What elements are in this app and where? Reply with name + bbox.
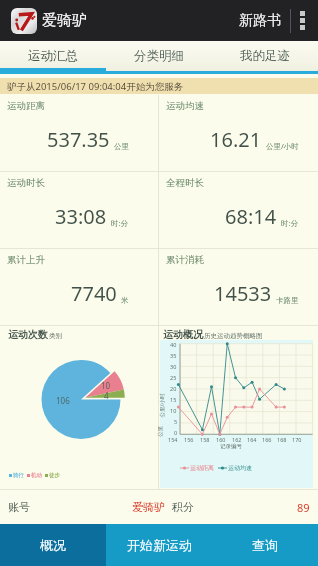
staticText: 35: [170, 352, 177, 359]
staticText: 徒步: [49, 472, 60, 479]
staticText: 166: [262, 436, 272, 443]
staticText: 分类明细: [134, 48, 184, 64]
button[interactable]: 运动距离: [0, 95, 158, 171]
button[interactable]: 106: [0, 326, 158, 489]
staticText: 爱骑驴: [42, 11, 87, 30]
staticText: 10: [170, 407, 177, 414]
button[interactable]: App logo: [11, 8, 37, 34]
button[interactable]: More options: [291, 0, 313, 41]
button[interactable]: 运动时长: [0, 172, 158, 248]
staticText: 89: [297, 500, 310, 515]
staticText: 驴子从2015/06/17 09:04:04开始为您服务: [7, 80, 184, 93]
staticText: 162: [232, 436, 242, 443]
staticText: 公里: [157, 426, 164, 437]
staticText: 累计消耗: [166, 254, 204, 266]
staticText: 类别: [49, 332, 62, 340]
button[interactable]: 运动汇总: [0, 41, 106, 74]
staticText: 5: [174, 418, 178, 425]
staticText: 历史运动趋势概略图: [204, 332, 263, 340]
staticText: 全程时长: [166, 177, 204, 189]
staticText: 25: [170, 374, 177, 381]
staticText: 164: [247, 436, 257, 443]
staticText: 运动距离: [190, 464, 214, 472]
staticText: 运动次数: [8, 328, 48, 341]
staticText: 40: [170, 341, 177, 348]
staticText: 0: [174, 429, 178, 436]
staticText: 时:分: [111, 218, 129, 228]
staticText: 158: [200, 436, 210, 443]
staticText: 运动概况: [163, 328, 203, 341]
button[interactable]: 新路书: [233, 0, 287, 41]
staticText: 我的足迹: [240, 48, 290, 64]
staticText: 68:14: [225, 203, 277, 230]
staticText: 运动汇总: [28, 48, 78, 64]
staticText: 7740: [71, 280, 117, 307]
staticText: 106: [56, 395, 70, 406]
staticText: 154: [168, 436, 178, 443]
staticText: 14533: [214, 280, 272, 307]
staticText: 查询: [252, 537, 278, 553]
staticText: 记录编号: [220, 443, 242, 450]
button[interactable]: 全程时长: [159, 172, 318, 248]
staticText: 公里: [114, 142, 129, 151]
staticText: 累计上升: [7, 254, 45, 266]
staticText: 运动均速: [166, 100, 204, 112]
staticText: 168: [277, 436, 287, 443]
staticText: 33:08: [55, 203, 107, 230]
button[interactable]: 账号: [0, 490, 318, 524]
staticText: 537.35: [47, 126, 110, 153]
staticText: 机动: [31, 472, 42, 479]
staticText: 170: [292, 436, 302, 443]
staticText: 爱骑驴: [132, 500, 165, 514]
button[interactable]: 查询: [212, 524, 318, 566]
button[interactable]: 40: [159, 326, 318, 489]
staticText: 运动时长: [7, 177, 45, 189]
staticText: 运动距离: [7, 100, 45, 112]
staticText: 4: [104, 390, 109, 401]
staticText: 米: [121, 296, 129, 305]
button[interactable]: 运动均速: [159, 95, 318, 171]
button[interactable]: 开始新运动: [106, 524, 212, 566]
staticText: 160: [216, 436, 226, 443]
staticText: 运动均速: [228, 464, 252, 472]
staticText: 20: [170, 385, 177, 392]
staticText: 15: [170, 396, 177, 403]
button[interactable]: 概况: [0, 524, 106, 566]
staticText: 16.21: [210, 126, 262, 153]
staticText: 账号: [8, 500, 30, 514]
staticText: 概况: [40, 537, 66, 553]
staticText: 开始新运动: [127, 537, 192, 553]
staticText: 卡路里: [276, 296, 299, 305]
staticText: 新路书: [239, 12, 281, 30]
button[interactable]: 累计消耗: [159, 249, 318, 325]
staticText: 公里/小时: [266, 141, 299, 151]
staticText: 30: [170, 363, 177, 370]
staticText: 156: [184, 436, 194, 443]
staticText: 公里/小时: [157, 392, 165, 417]
staticText: 10: [101, 380, 111, 391]
staticText: 积分: [172, 500, 194, 514]
button[interactable]: 分类明细: [106, 41, 212, 74]
button[interactable]: 我的足迹: [212, 41, 318, 74]
staticText: 时:分: [281, 218, 299, 228]
staticText: 骑行: [13, 472, 24, 479]
button[interactable]: 累计上升: [0, 249, 158, 325]
